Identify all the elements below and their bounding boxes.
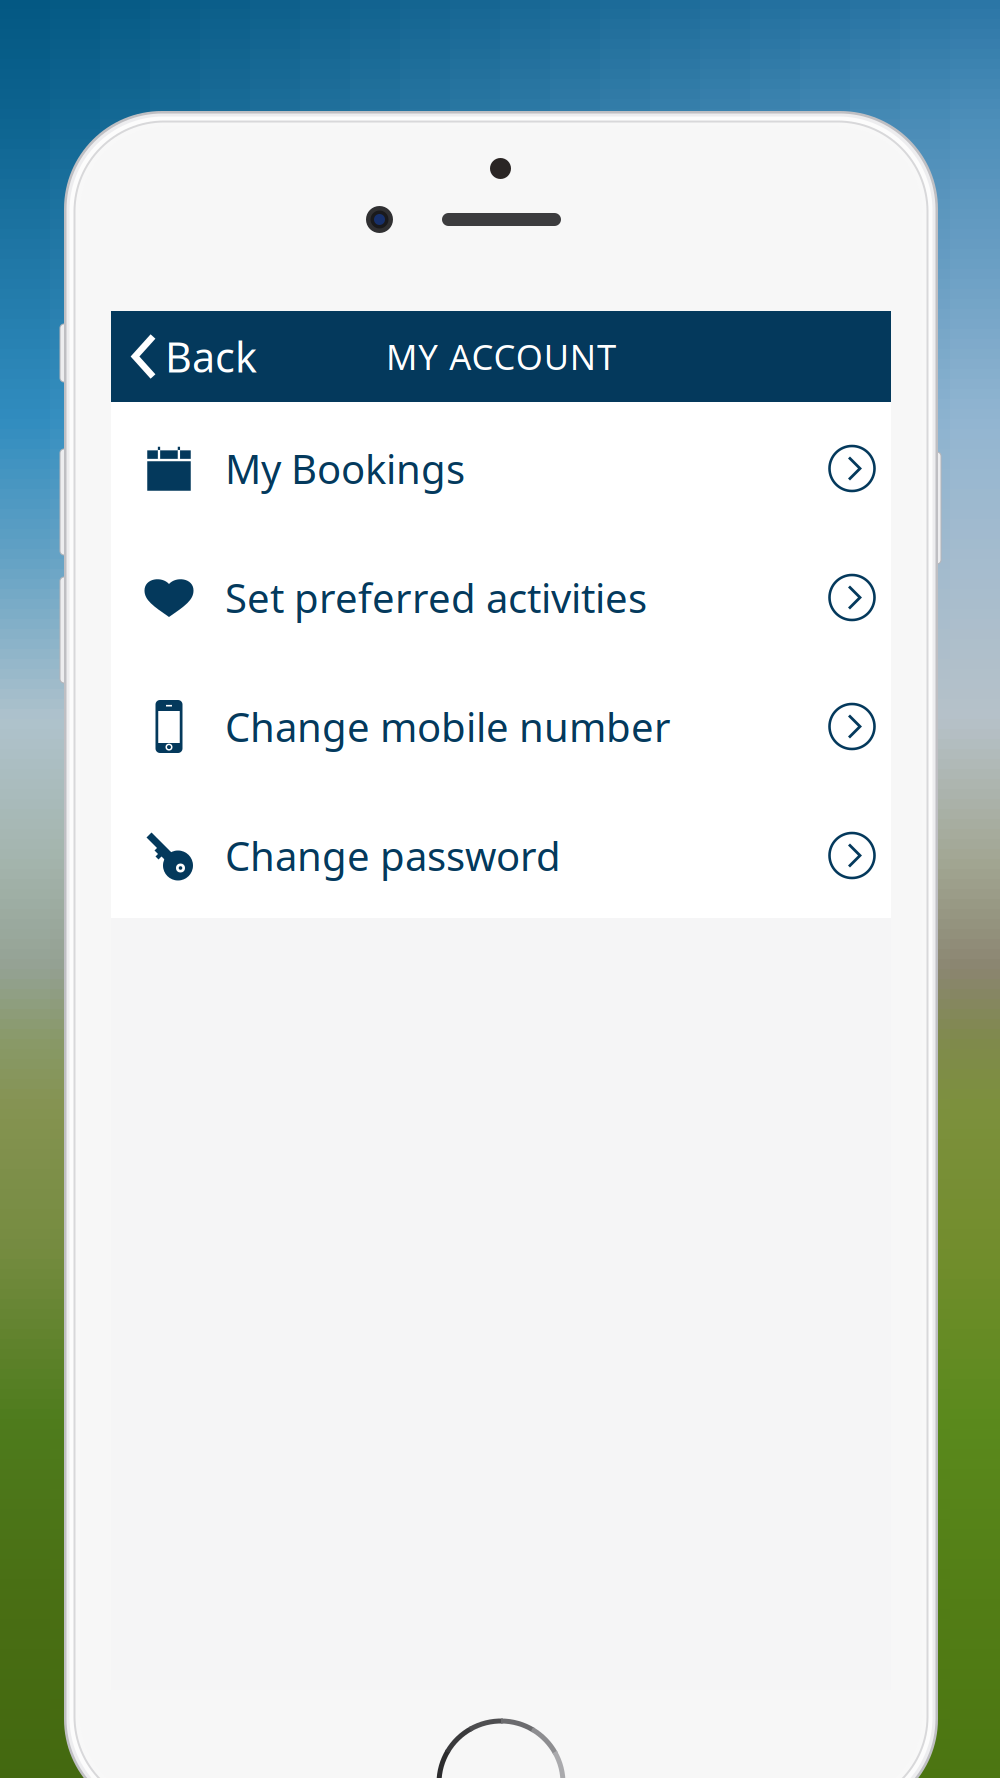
staticText: Back — [165, 329, 257, 384]
staticText: My Bookings — [225, 442, 465, 495]
button[interactable]: Change mobile number — [111, 660, 891, 789]
button[interactable]: My Bookings — [111, 402, 891, 531]
button[interactable]: Change password — [111, 789, 891, 918]
staticText: MY ACCOUNT — [386, 333, 616, 379]
button[interactable]: Back — [111, 311, 273, 402]
staticText: Change mobile number — [225, 700, 671, 753]
staticText: Change password — [225, 829, 561, 882]
button[interactable]: Set preferred activities — [111, 531, 891, 660]
staticText: Set preferred activities — [225, 571, 647, 624]
